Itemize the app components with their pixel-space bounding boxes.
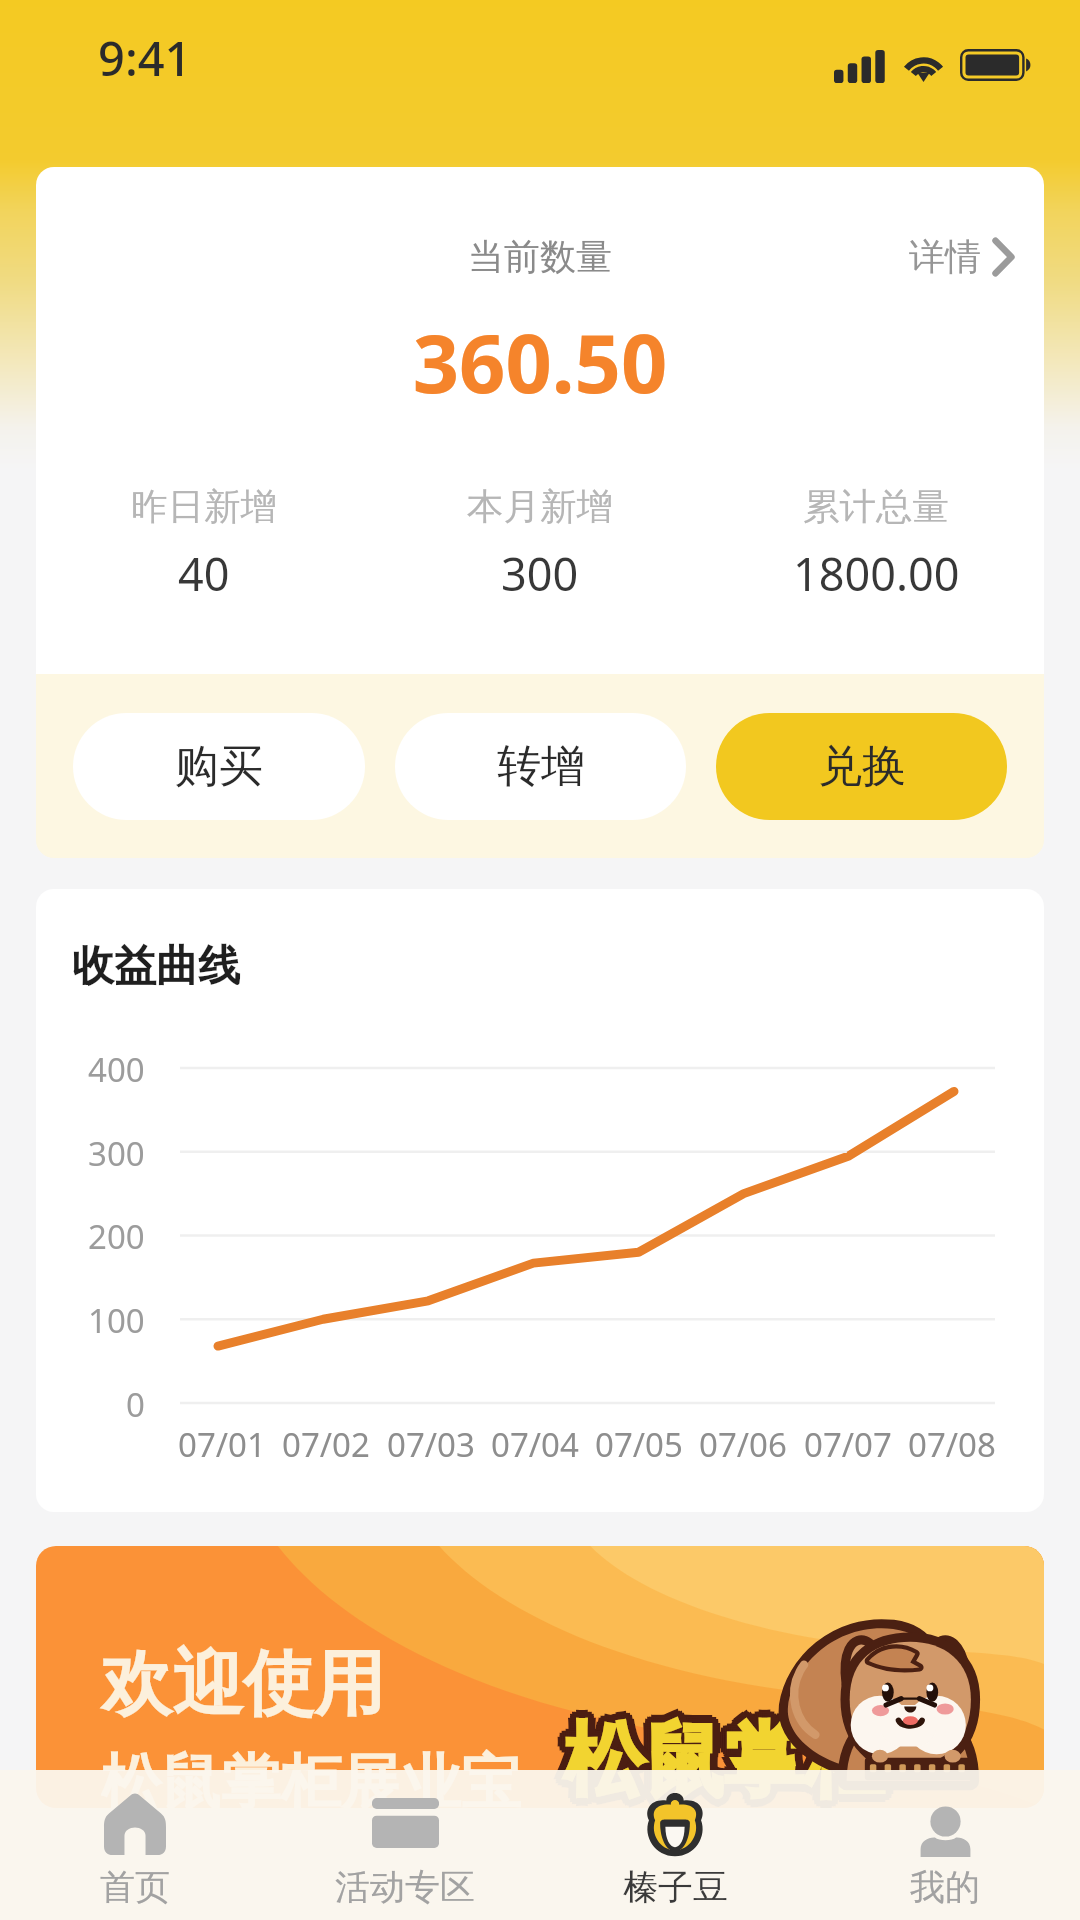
staticText: 松鼠掌柜 [558, 1711, 878, 1808]
staticText: 松鼠掌柜 [562, 1717, 882, 1808]
staticText: 松鼠掌柜 [568, 1711, 888, 1808]
staticText: 松鼠掌柜 [562, 1709, 882, 1808]
staticText: 详情 [909, 234, 981, 279]
staticText: 松鼠掌柜 [558, 1709, 878, 1808]
staticText: 活动专区 [335, 1865, 475, 1909]
staticText: 松鼠掌柜 [560, 1717, 880, 1808]
staticText: 松鼠掌柜 [568, 1705, 888, 1806]
button[interactable]: 欢迎使用松鼠掌柜展业宝 [36, 1546, 1044, 1808]
staticText: 松鼠掌柜 [564, 1709, 884, 1808]
staticText: 首页 [100, 1865, 170, 1909]
staticText: 松鼠掌柜 [568, 1713, 888, 1808]
staticText: 松鼠掌柜 [560, 1711, 880, 1808]
staticText: 松鼠掌柜 [564, 1707, 884, 1808]
button[interactable]: 活动专区 [270, 1770, 540, 1920]
staticText: 松鼠掌柜 [558, 1715, 878, 1808]
staticText: 松鼠掌柜 [556, 1711, 876, 1808]
staticText: 松鼠掌柜 [562, 1705, 882, 1806]
staticText: 松鼠掌柜 [568, 1715, 888, 1808]
button[interactable]: 我的 [810, 1770, 1080, 1920]
staticText: 本月新增 [467, 484, 613, 530]
button[interactable]: 转增 [395, 713, 686, 820]
staticText: 转增 [497, 739, 585, 794]
staticText: 松鼠掌柜 [570, 1711, 890, 1808]
staticText: 欢迎使用 [101, 1640, 385, 1729]
staticText: 松鼠掌柜 [570, 1709, 890, 1808]
staticText: 收益曲线 [72, 940, 240, 993]
staticText: 松鼠掌柜 [562, 1715, 882, 1808]
button[interactable]: 详情 [909, 234, 1014, 279]
staticText: 松鼠掌柜 [566, 1717, 886, 1808]
staticText: 松鼠掌柜 [568, 1717, 888, 1808]
staticText: 0 [126, 1382, 145, 1427]
staticText: 当前数量 [468, 234, 612, 279]
staticText: 购买 [175, 739, 263, 794]
staticText: 300 [501, 543, 579, 604]
staticText: 松鼠掌柜 [564, 1711, 884, 1808]
staticText: 松鼠掌柜 [566, 1705, 886, 1806]
staticText: 我的 [910, 1865, 980, 1909]
staticText: 松鼠掌柜 [564, 1715, 884, 1808]
staticText: 松鼠掌柜 [558, 1713, 878, 1808]
staticText: 07/06 [699, 1422, 787, 1467]
staticText: 40 [178, 543, 230, 604]
staticText: 松鼠掌柜 [564, 1703, 884, 1804]
staticText: 累计总量 [803, 484, 949, 530]
staticText: 松鼠掌柜 [560, 1707, 880, 1808]
staticText: 200 [88, 1214, 145, 1259]
staticText: 昨日新增 [131, 484, 277, 530]
staticText: 松鼠掌柜 [568, 1707, 888, 1808]
staticText: 07/04 [491, 1422, 579, 1467]
button[interactable]: 兑换 [716, 713, 1007, 820]
staticText: 松鼠掌柜 [572, 1711, 892, 1808]
staticText: 松鼠掌柜 [560, 1713, 880, 1808]
staticText: 松鼠掌柜 [564, 1717, 884, 1808]
staticText: 1800.00 [793, 543, 960, 604]
staticText: 100 [88, 1298, 145, 1343]
staticText: 兑换 [818, 739, 906, 794]
staticText: 松鼠掌柜 [564, 1705, 884, 1806]
staticText: 松鼠掌柜 [558, 1707, 878, 1808]
staticText: 07/03 [387, 1422, 475, 1467]
staticText: 榛子豆 [623, 1865, 728, 1909]
staticText: 松鼠掌柜 [562, 1711, 882, 1808]
staticText: 松鼠掌柜 [564, 1711, 884, 1808]
staticText: 松鼠掌柜 [568, 1709, 888, 1808]
button[interactable]: 榛子豆 [540, 1770, 810, 1920]
other: Wi-Fi [900, 48, 947, 82]
staticText: 400 [88, 1047, 145, 1092]
staticText: 360.50 [36, 306, 1044, 416]
staticText: 07/07 [804, 1422, 892, 1467]
staticText: 07/05 [595, 1422, 683, 1467]
staticText: 松鼠掌柜 [570, 1715, 890, 1808]
staticText: 松鼠掌柜 [566, 1711, 886, 1808]
staticText: 松鼠掌柜展业宝 [101, 1745, 521, 1808]
staticText: 松鼠掌柜 [560, 1715, 880, 1808]
staticText: 07/01 [178, 1422, 266, 1467]
staticText: 松鼠掌柜 [570, 1713, 890, 1808]
staticText: 松鼠掌柜 [564, 1719, 884, 1808]
other: Battery [960, 49, 1033, 81]
staticText: 松鼠掌柜 [566, 1709, 886, 1808]
staticText: 松鼠掌柜 [566, 1713, 886, 1808]
staticText: 松鼠掌柜 [560, 1709, 880, 1808]
staticText: 松鼠掌柜 [560, 1705, 880, 1806]
staticText: 松鼠掌柜 [562, 1713, 882, 1808]
other: Cellular signal [834, 50, 885, 83]
staticText: 松鼠掌柜 [564, 1713, 884, 1808]
staticText: 07/08 [908, 1422, 996, 1467]
button[interactable]: 购买 [73, 713, 365, 820]
staticText: 300 [88, 1131, 145, 1176]
staticText: 松鼠掌柜 [562, 1707, 882, 1808]
staticText: 9:41 [98, 26, 192, 90]
staticText: 松鼠掌柜 [566, 1707, 886, 1808]
staticText: 07/02 [282, 1422, 370, 1467]
staticText: 松鼠掌柜 [566, 1715, 886, 1808]
button[interactable]: 首页 [0, 1770, 270, 1920]
staticText: 松鼠掌柜 [570, 1707, 890, 1808]
